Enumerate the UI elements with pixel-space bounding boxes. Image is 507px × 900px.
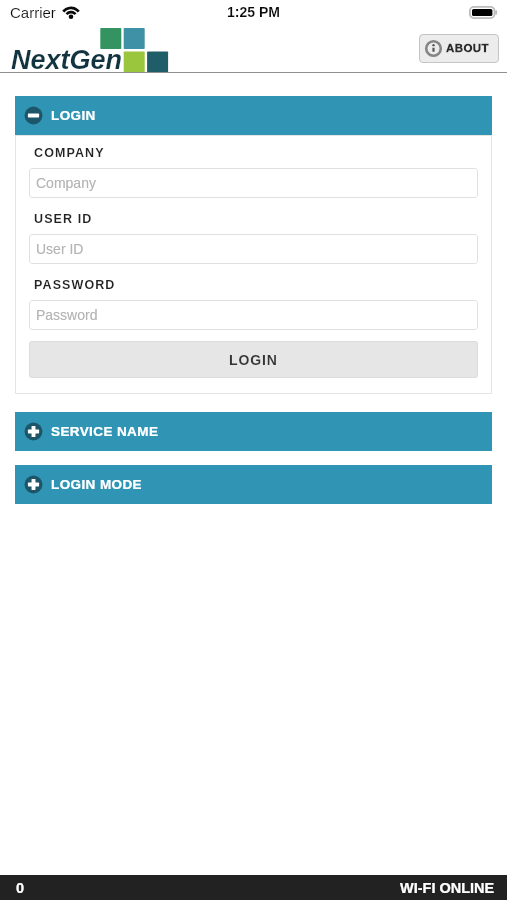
button[interactable]: LOGIN <box>29 341 478 378</box>
staticText: ABOUT <box>446 42 489 55</box>
staticText: LOGIN <box>229 352 278 368</box>
staticText: 0 <box>16 880 25 896</box>
staticText: NextGen <box>11 45 123 75</box>
staticText: Company <box>36 175 96 191</box>
staticText: User ID <box>36 241 84 257</box>
button[interactable]: About <box>419 34 499 63</box>
button[interactable]: User ID <box>29 234 478 264</box>
button[interactable]: Company <box>29 168 478 198</box>
staticText: Password <box>36 307 98 323</box>
staticText: 1:25 PM <box>227 4 280 20</box>
staticText: PASSWORD <box>34 278 116 292</box>
staticText: SERVICE NAME <box>51 424 159 439</box>
button[interactable]: Expand SERVICE NAME <box>15 412 492 451</box>
button[interactable]: Collapse LOGIN <box>15 96 492 135</box>
staticText: USER ID <box>34 212 93 226</box>
staticText: Carrier <box>10 4 56 21</box>
staticText: LOGIN MODE <box>51 477 142 492</box>
button[interactable]: Expand LOGIN MODE <box>15 465 492 504</box>
staticText: LOGIN <box>51 108 96 123</box>
button[interactable]: Password <box>29 300 478 330</box>
staticText: COMPANY <box>34 146 105 160</box>
staticText: WI-FI ONLINE <box>400 880 495 896</box>
